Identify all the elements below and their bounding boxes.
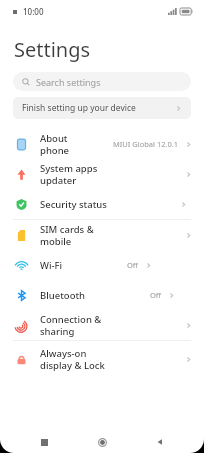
staticText: SIM cards & mobile networks — [40, 223, 112, 248]
button[interactable]: Bluetooth — [0, 280, 204, 310]
button[interactable]: SIM cards & mobile networks — [0, 220, 204, 250]
button[interactable]: Connection & sharing — [0, 310, 204, 340]
button[interactable]: Home — [88, 431, 116, 453]
staticText: Connection & sharing — [40, 313, 112, 338]
staticText: 10:00 — [23, 6, 44, 17]
button[interactable]: Always-on display & Lock screen — [0, 341, 204, 377]
button[interactable]: Wi-Fi — [0, 250, 204, 280]
staticText: About phone — [40, 132, 76, 157]
button[interactable]: System apps updater — [0, 159, 204, 189]
staticText: Search settings — [36, 76, 101, 88]
staticText: Off — [150, 290, 162, 300]
staticText: Wi-Fi — [40, 259, 63, 272]
staticText: MIUI Global 12.0.1 — [113, 139, 179, 149]
staticText: System apps updater — [40, 162, 112, 187]
button[interactable]: Finish setting up your device — [13, 97, 191, 119]
staticText: Always-on display & Lock screen — [40, 347, 112, 372]
button[interactable]: Search settings — [13, 72, 191, 91]
button[interactable]: About phone — [0, 129, 204, 159]
staticText: Bluetooth — [40, 289, 86, 302]
staticText: Security status — [40, 198, 107, 211]
button[interactable]: Security status — [0, 189, 204, 219]
staticText: Off — [127, 260, 139, 270]
staticText: Finish setting up your device — [22, 102, 136, 114]
button[interactable]: Recents — [30, 431, 58, 453]
staticText: Settings — [14, 36, 91, 63]
button[interactable]: Back — [146, 431, 174, 453]
